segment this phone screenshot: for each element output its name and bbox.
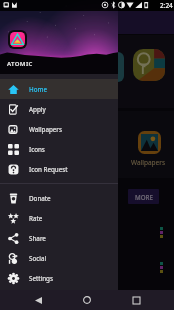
staticText: Share: [29, 234, 46, 243]
staticText: Wallpapers: [29, 125, 62, 134]
button[interactable]: Back: [27, 290, 49, 310]
button[interactable]: More options: [159, 226, 164, 239]
button[interactable]: Icons: [0, 139, 118, 159]
button[interactable]: Icon Request: [0, 159, 118, 179]
button[interactable]: Wallpapers: [0, 119, 118, 139]
button[interactable]: Social: [0, 248, 118, 268]
staticText: Donate: [29, 194, 51, 203]
staticText: Home: [29, 85, 48, 94]
staticText: 2:24: [160, 1, 173, 10]
staticText: Settings: [29, 274, 53, 283]
staticText: Icon Request: [29, 165, 68, 174]
staticText: Wallpapers: [131, 158, 166, 167]
button[interactable]: Share: [0, 228, 118, 248]
staticText: Social: [29, 254, 47, 263]
staticText: Rate: [29, 214, 43, 223]
button[interactable]: Rate: [0, 208, 118, 228]
button[interactable]: Settings: [0, 268, 118, 288]
button[interactable]: More options: [159, 261, 164, 274]
button[interactable]: Donate: [0, 188, 118, 208]
button[interactable]: Apply: [0, 99, 118, 119]
staticText: MORE: [135, 193, 153, 201]
button[interactable]: MORE: [128, 189, 159, 204]
staticText: Icons: [29, 145, 45, 154]
button[interactable]: Recents: [125, 290, 147, 310]
staticText: ATOMIC: [7, 60, 33, 68]
button[interactable]: Home: [0, 79, 118, 99]
button[interactable]: Home: [76, 290, 98, 310]
staticText: Apply: [29, 105, 46, 114]
